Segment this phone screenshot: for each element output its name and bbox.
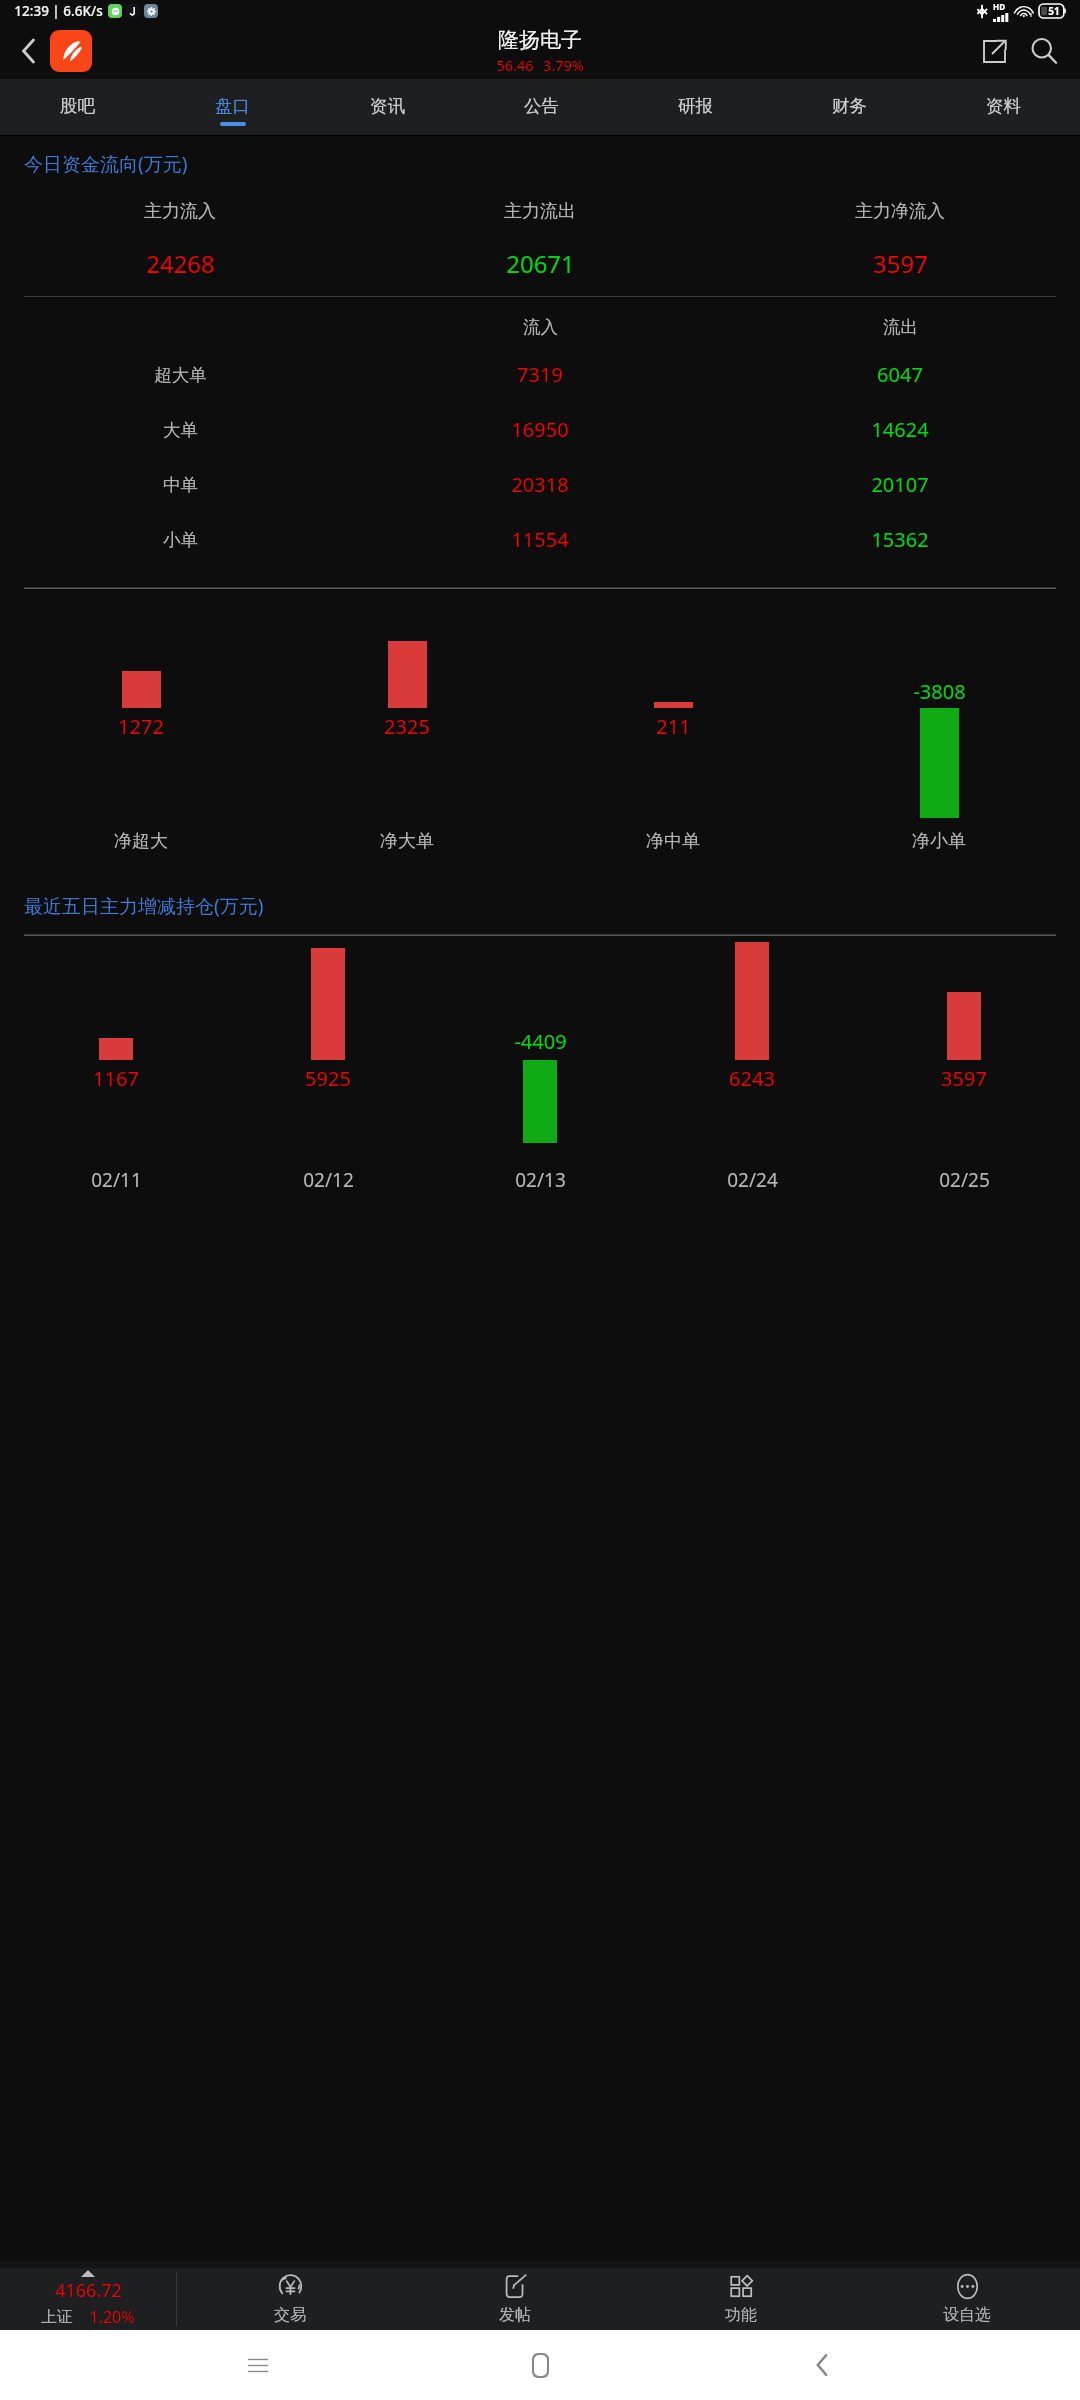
staticText: 2325 (384, 713, 430, 740)
staticText: 财务 (832, 95, 867, 117)
button[interactable]: App logo (50, 30, 92, 72)
staticText: 功能 (725, 2305, 757, 2325)
staticText: 02/25 (939, 1167, 990, 1193)
staticText: 02/11 (91, 1167, 142, 1193)
button[interactable]: 股吧 (0, 79, 155, 135)
staticText: 主力流出 (504, 200, 576, 223)
button[interactable]: 小单 (0, 512, 1080, 567)
staticText: 02/24 (727, 1167, 778, 1193)
staticText: 资料 (986, 95, 1021, 117)
button[interactable]: 发帖 (402, 2268, 628, 2330)
staticText: 最近五日主力增减持仓(万元) (24, 893, 264, 919)
staticText: HD (993, 1, 1005, 12)
staticText: 1.20% (89, 2306, 135, 2328)
staticText: 净超大 (114, 830, 168, 853)
staticText: 净中单 (646, 830, 700, 853)
staticText: 4166.72 (55, 2278, 122, 2303)
button[interactable]: 功能 (628, 2268, 854, 2330)
staticText: 中单 (163, 474, 198, 496)
button[interactable]: Share (972, 29, 1016, 73)
staticText: 20107 (871, 471, 929, 498)
staticText: 16950 (511, 416, 569, 443)
button[interactable]: Search (1022, 29, 1066, 73)
staticText: 主力流入 (144, 200, 216, 223)
button[interactable]: 研报 (618, 79, 772, 135)
staticText: 20318 (511, 471, 569, 498)
button[interactable]: 资料 (926, 79, 1080, 135)
staticText: 今日资金流向(万元) (24, 151, 188, 177)
staticText: 15362 (871, 526, 929, 553)
staticText: 小单 (163, 529, 198, 551)
staticText: 隆扬电子 (498, 27, 582, 53)
button[interactable]: 盘口 (155, 79, 310, 135)
button[interactable]: Back (798, 2341, 846, 2389)
button[interactable]: 设自选 (854, 2268, 1080, 2330)
staticText: 02/12 (303, 1167, 354, 1193)
staticText: -3808 (913, 678, 966, 705)
button[interactable]: 中单 (0, 457, 1080, 512)
staticText: 5925 (305, 1065, 351, 1092)
staticText: 6243 (729, 1065, 775, 1092)
staticText: 大单 (163, 419, 198, 441)
staticText: 51 (1048, 4, 1060, 18)
staticText: 24268 (146, 247, 215, 280)
staticText: 超大单 (154, 364, 207, 386)
staticText: 公告 (524, 95, 559, 117)
staticText: 20671 (506, 247, 575, 280)
staticText: 11554 (511, 526, 569, 553)
button[interactable]: Recents (234, 2341, 282, 2389)
staticText: 3.79% (543, 55, 584, 75)
staticText: 发帖 (499, 2305, 531, 2325)
button[interactable]: Home (516, 2341, 564, 2389)
staticText: 02/13 (515, 1167, 566, 1193)
staticText: 12:39 | 6.6K/s (14, 2, 103, 20)
staticText: 股吧 (60, 95, 95, 117)
button[interactable]: 公告 (464, 79, 618, 135)
button[interactable]: 大单 (0, 402, 1080, 457)
button[interactable]: 财务 (772, 79, 926, 135)
staticText: 211 (656, 713, 691, 740)
staticText: 1272 (118, 713, 164, 740)
staticText: 设自选 (943, 2305, 991, 2325)
staticText: 56.46 (496, 55, 534, 75)
button[interactable]: 交易 (177, 2268, 402, 2330)
staticText: -4409 (514, 1028, 567, 1055)
staticText: 盘口 (215, 95, 250, 117)
staticText: 14624 (871, 416, 929, 443)
staticText: 资讯 (370, 95, 405, 117)
staticText: 6047 (877, 361, 923, 388)
staticText: 1167 (93, 1065, 139, 1092)
staticText: 3597 (873, 247, 928, 280)
button[interactable]: 超大单 (0, 347, 1080, 402)
staticText: 3597 (941, 1065, 987, 1092)
button[interactable]: 4166.72 (0, 2268, 176, 2330)
staticText: 7319 (517, 361, 563, 388)
staticText: 净小单 (912, 830, 966, 853)
button[interactable]: Back (8, 31, 48, 71)
staticText: 流出 (883, 316, 918, 338)
staticText: 主力净流入 (855, 200, 945, 223)
staticText: 流入 (523, 316, 558, 338)
staticText: 上证 (41, 2307, 73, 2327)
button[interactable]: 资讯 (310, 79, 464, 135)
staticText: 交易 (274, 2305, 306, 2325)
staticText: 研报 (678, 95, 713, 117)
staticText: 净大单 (380, 830, 434, 853)
